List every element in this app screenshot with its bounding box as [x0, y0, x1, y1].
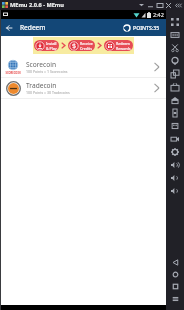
button[interactable]: Fullscreen: [166, 15, 184, 28]
staticText: 100 Points = 30 Tradecoins: [26, 90, 70, 95]
button[interactable]: SCORECOIN: [1, 57, 166, 77]
button[interactable]: Receive: [68, 40, 95, 51]
button[interactable]: Maximize: [155, 0, 164, 10]
button[interactable]: Collapse toolbar: [173, 0, 183, 10]
staticText: Receive: [80, 41, 93, 46]
button[interactable]: Apk install: [166, 80, 184, 93]
button[interactable]: Tradecoin: [1, 78, 166, 98]
button[interactable]: Location: [166, 54, 184, 67]
staticText: 2:42: [153, 11, 164, 18]
button[interactable]: Minimize: [146, 0, 155, 10]
button[interactable]: Volume up: [166, 158, 184, 171]
button[interactable]: More: [137, 0, 146, 10]
button[interactable]: Redeem: [104, 40, 133, 51]
button[interactable]: Back: [166, 256, 184, 268]
button[interactable]: Volume down: [166, 171, 184, 184]
button[interactable]: Home: [166, 93, 184, 106]
button[interactable]: Home: [166, 268, 184, 280]
button[interactable]: Recents: [166, 280, 184, 292]
button[interactable]: Rotate: [166, 106, 184, 119]
button[interactable]: Settings: [166, 145, 184, 158]
button[interactable]: Menu: [166, 292, 184, 304]
staticText: & Play: [46, 46, 57, 51]
button[interactable]: Close: [164, 0, 173, 10]
staticText: MEmu 2.0.6 - MEmu: [10, 1, 64, 9]
staticText: Install: [46, 41, 57, 46]
button[interactable]: Shake: [166, 119, 184, 132]
staticText: Scorecoin: [26, 60, 57, 69]
button[interactable]: More: [166, 184, 184, 197]
staticText: Credits: [80, 46, 92, 51]
button[interactable]: Screenshot: [166, 41, 184, 54]
button[interactable]: Back: [1, 19, 17, 36]
button[interactable]: POINTS:35: [121, 22, 163, 33]
staticText: POINTS:35: [133, 24, 160, 31]
button[interactable]: Multi instance: [166, 67, 184, 80]
staticText: Rewards: [116, 46, 131, 51]
staticText: 100 Points = 1 Scorecoins: [26, 69, 68, 74]
button[interactable]: Keyboard: [166, 28, 184, 41]
staticText: Tradecoin: [26, 81, 57, 90]
staticText: Redeem: [20, 23, 46, 32]
button[interactable]: Install: [34, 40, 59, 51]
staticText: SCORECOIN: [5, 71, 21, 75]
staticText: Redeem: [116, 41, 130, 46]
button[interactable]: Record: [166, 132, 184, 145]
